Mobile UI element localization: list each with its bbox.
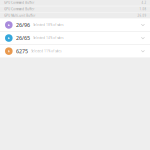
staticText: 4.2 — [141, 1, 146, 4]
button[interactable]: 6275 — [0, 45, 150, 57]
staticText: Selected 14% of sales — [33, 36, 63, 40]
staticText: 26/96 — [16, 21, 30, 28]
staticText: 26/65 — [16, 34, 30, 42]
button[interactable]: 26/96 — [0, 19, 150, 31]
staticText: GPU Multi-unit Buffer — [4, 14, 35, 17]
staticText: 6275 — [16, 48, 28, 55]
staticText: 26.09 — [137, 14, 146, 17]
staticText: GPU Command Buffer — [4, 7, 34, 11]
staticText: Selected 11% of sales — [31, 49, 61, 53]
staticText: Selected 18% of sales — [33, 23, 63, 27]
button[interactable]: 26/65 — [0, 32, 150, 44]
staticText: GPU Command Buffer — [4, 1, 34, 4]
staticText: 1.08 — [139, 7, 146, 11]
